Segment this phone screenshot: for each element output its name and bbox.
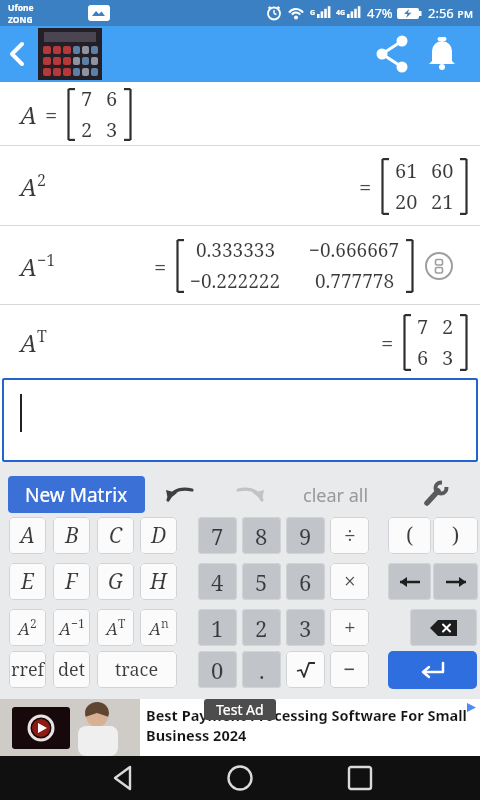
staticText: 6 — [417, 344, 429, 371]
button[interactable]: H — [140, 563, 177, 600]
staticText: × — [344, 567, 356, 596]
button[interactable]: 7 — [198, 517, 237, 554]
staticText: −0.666667 — [309, 237, 400, 263]
staticText: 3 — [442, 344, 454, 371]
button[interactable]: A−1 — [53, 609, 90, 646]
staticText: D — [151, 521, 167, 550]
staticText: 6 — [106, 85, 118, 112]
button[interactable] — [424, 251, 454, 281]
staticText: 1 — [211, 613, 224, 643]
staticText: ÷ — [344, 521, 356, 550]
staticText: A — [20, 98, 37, 131]
staticText: A−1 — [59, 615, 85, 640]
button[interactable]: AT — [0, 305, 480, 378]
button[interactable]: 5 — [242, 563, 281, 600]
staticText: det — [58, 657, 86, 682]
button[interactable]: 2 — [242, 609, 281, 646]
staticText: rref — [11, 657, 45, 682]
button[interactable]: × — [330, 563, 369, 600]
button[interactable]: G — [97, 563, 134, 600]
button[interactable] — [416, 26, 472, 82]
staticText: Ufone — [8, 2, 34, 14]
staticText: 8 — [255, 521, 268, 551]
staticText: Best Payment Processing Software For Sma… — [146, 705, 467, 725]
button[interactable]: F — [53, 563, 90, 600]
staticText: An — [149, 615, 169, 640]
staticText: . — [259, 655, 265, 685]
button[interactable]: New Matrix — [8, 476, 145, 513]
staticText: 2 — [81, 116, 93, 143]
staticText: 6 — [299, 567, 312, 597]
button[interactable]: E — [9, 563, 46, 600]
button[interactable]: ÷ — [330, 517, 369, 554]
staticText: = — [381, 327, 394, 357]
button[interactable]: A — [9, 517, 46, 554]
button[interactable] — [372, 26, 416, 82]
staticText: A2 — [20, 169, 46, 203]
button[interactable] — [2, 378, 478, 462]
button[interactable]: trace — [97, 651, 177, 688]
button[interactable]: clear all — [300, 478, 372, 512]
button[interactable] — [100, 756, 148, 800]
staticText: = — [154, 251, 167, 281]
button[interactable]: ) — [433, 517, 478, 554]
button[interactable]: 6 — [286, 563, 325, 600]
button[interactable] — [286, 651, 325, 688]
staticText: 9 — [299, 521, 312, 551]
button[interactable]: ( — [388, 517, 431, 554]
staticText: 0.333333 — [196, 237, 276, 263]
button[interactable]: B — [53, 517, 90, 554]
button[interactable]: rref — [9, 651, 46, 688]
staticText: ) — [452, 521, 460, 550]
button[interactable]: A — [0, 82, 480, 146]
button[interactable]: 4 — [198, 563, 237, 600]
staticText: 21 — [431, 188, 454, 215]
staticText: A2 — [18, 615, 37, 640]
button[interactable]: AT — [97, 609, 134, 646]
staticText: F — [65, 567, 78, 596]
staticText: 5 — [255, 567, 268, 597]
staticText: 2 — [255, 613, 268, 643]
staticText: 61 — [395, 157, 418, 184]
button[interactable]: A2 — [9, 609, 46, 646]
button[interactable]: + — [330, 609, 369, 646]
staticText: 3 — [299, 613, 312, 643]
staticText: A−1 — [20, 249, 56, 283]
staticText: 2 — [442, 313, 454, 340]
button[interactable]: . — [242, 651, 281, 688]
button[interactable]: 9 — [286, 517, 325, 554]
button[interactable]: An — [140, 609, 177, 646]
button[interactable]: 3 — [286, 609, 325, 646]
staticText: − — [343, 655, 356, 684]
staticText: 20 — [395, 188, 418, 215]
button[interactable] — [336, 756, 384, 800]
button[interactable] — [388, 563, 431, 600]
button[interactable] — [226, 478, 270, 512]
button[interactable] — [388, 651, 477, 689]
button[interactable]: 1 — [198, 609, 237, 646]
button[interactable] — [410, 609, 477, 646]
staticText: 0.777778 — [315, 268, 395, 294]
button[interactable]: D — [140, 517, 177, 554]
button[interactable]: 8 — [242, 517, 281, 554]
button[interactable] — [160, 478, 204, 512]
staticText: 0 — [211, 655, 224, 685]
button[interactable] — [433, 563, 478, 600]
staticText: + — [344, 613, 356, 642]
staticText: AT — [20, 325, 47, 359]
button[interactable] — [216, 756, 264, 800]
button[interactable]: A−1 — [0, 226, 480, 305]
staticText: New Matrix — [25, 482, 128, 508]
staticText: ZONG — [8, 14, 33, 26]
staticText: = — [359, 171, 372, 201]
staticText: AT — [106, 615, 126, 640]
button[interactable] — [416, 478, 456, 512]
button[interactable]: det — [53, 651, 90, 688]
button[interactable]: A2 — [0, 146, 480, 226]
button[interactable]: − — [330, 651, 369, 688]
button[interactable] — [0, 26, 36, 82]
staticText: 4 — [211, 567, 224, 597]
staticText: H — [150, 567, 167, 596]
button[interactable]: C — [97, 517, 134, 554]
button[interactable]: 0 — [198, 651, 237, 688]
